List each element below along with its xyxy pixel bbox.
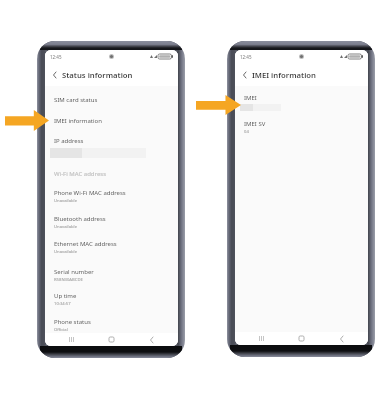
staticText: Unavailable [54, 198, 78, 204]
button[interactable]: IP address [45, 127, 178, 160]
staticText: Phone status [54, 318, 91, 326]
button[interactable]: IMEI [235, 86, 368, 110]
button[interactable]: Serial number [45, 258, 178, 282]
button[interactable]: SIM card status [45, 86, 178, 107]
button[interactable]: IMEI SV [235, 110, 368, 134]
staticText: IP address [54, 137, 84, 145]
button[interactable]: Phone Wi-Fi MAC address [45, 179, 178, 205]
staticText: Unavailable [54, 249, 78, 255]
button[interactable]: Wi-Fi MAC address [45, 160, 178, 179]
staticText: SIM card status [54, 96, 98, 104]
button[interactable]: Recent apps [242, 332, 281, 345]
button[interactable]: Navigate up [235, 63, 368, 86]
staticText: Wi-Fi MAC address [54, 170, 107, 178]
button[interactable]: Home [91, 333, 131, 346]
button[interactable]: IMEI information [45, 107, 178, 127]
staticText: IMEI SV [244, 120, 266, 128]
staticText: Unavailable [54, 224, 78, 230]
button[interactable]: Recent apps [52, 333, 91, 346]
staticText: Bluetooth address [54, 215, 106, 223]
staticText: IMEI information [252, 70, 316, 80]
button[interactable]: Home [281, 332, 321, 345]
staticText: Serial number [54, 268, 94, 276]
staticText: Up time [54, 292, 77, 300]
button[interactable]: Back [131, 333, 171, 346]
button[interactable]: Navigate up [45, 63, 178, 86]
staticText: 12:45 [50, 54, 62, 60]
staticText: IMEI information [54, 117, 102, 125]
staticText: IMEI [244, 94, 257, 102]
staticText: 12:45 [240, 54, 252, 60]
button[interactable]: Up time [45, 282, 178, 308]
button[interactable]: Bluetooth address [45, 205, 178, 230]
staticText: 10:34:57 [54, 301, 71, 307]
staticText: Official [54, 327, 68, 333]
staticText: R58N30ABCDE [54, 277, 83, 283]
button[interactable]: Back [321, 332, 361, 345]
staticText: Ethernet MAC address [54, 240, 117, 248]
button[interactable]: Ethernet MAC address [45, 230, 178, 258]
button[interactable]: Navigate up [49, 70, 59, 80]
button[interactable]: Phone status [45, 308, 178, 333]
staticText: Status information [62, 70, 133, 80]
staticText: 04 [244, 129, 249, 135]
button[interactable]: Navigate up [239, 70, 249, 80]
staticText: Phone Wi-Fi MAC address [54, 189, 126, 197]
